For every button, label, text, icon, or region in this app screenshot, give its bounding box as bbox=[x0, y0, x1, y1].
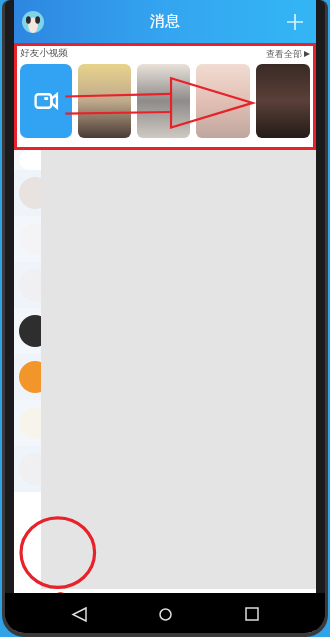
staticText: 查看全部 bbox=[266, 48, 302, 59]
staticText: 消息 bbox=[150, 12, 180, 31]
button[interactable] bbox=[14, 354, 316, 400]
button[interactable] bbox=[137, 64, 190, 138]
button[interactable] bbox=[14, 150, 316, 170]
button[interactable] bbox=[14, 400, 316, 446]
button[interactable]: Home bbox=[152, 601, 178, 627]
button[interactable] bbox=[14, 262, 316, 308]
button[interactable] bbox=[78, 64, 131, 138]
button[interactable] bbox=[196, 64, 250, 138]
button[interactable]: 3 bbox=[14, 589, 89, 633]
button[interactable] bbox=[256, 64, 310, 138]
button[interactable]: 联系人 bbox=[89, 589, 164, 633]
button[interactable]: 好友小视频 bbox=[14, 43, 316, 150]
button[interactable]: 看点 bbox=[164, 589, 240, 633]
button[interactable] bbox=[14, 446, 316, 492]
button[interactable] bbox=[14, 170, 316, 216]
button[interactable]: Record video bbox=[20, 64, 72, 138]
button[interactable]: 动态 bbox=[240, 589, 316, 633]
button[interactable] bbox=[14, 216, 316, 262]
button[interactable]: Recents bbox=[239, 601, 265, 627]
button[interactable]: Add bbox=[282, 9, 308, 35]
button[interactable]: Back bbox=[66, 601, 92, 627]
staticText: 好友小视频 bbox=[20, 47, 68, 59]
button[interactable]: Profile bbox=[22, 11, 44, 33]
button[interactable] bbox=[14, 308, 316, 354]
button[interactable]: 查看全部 bbox=[266, 48, 310, 59]
